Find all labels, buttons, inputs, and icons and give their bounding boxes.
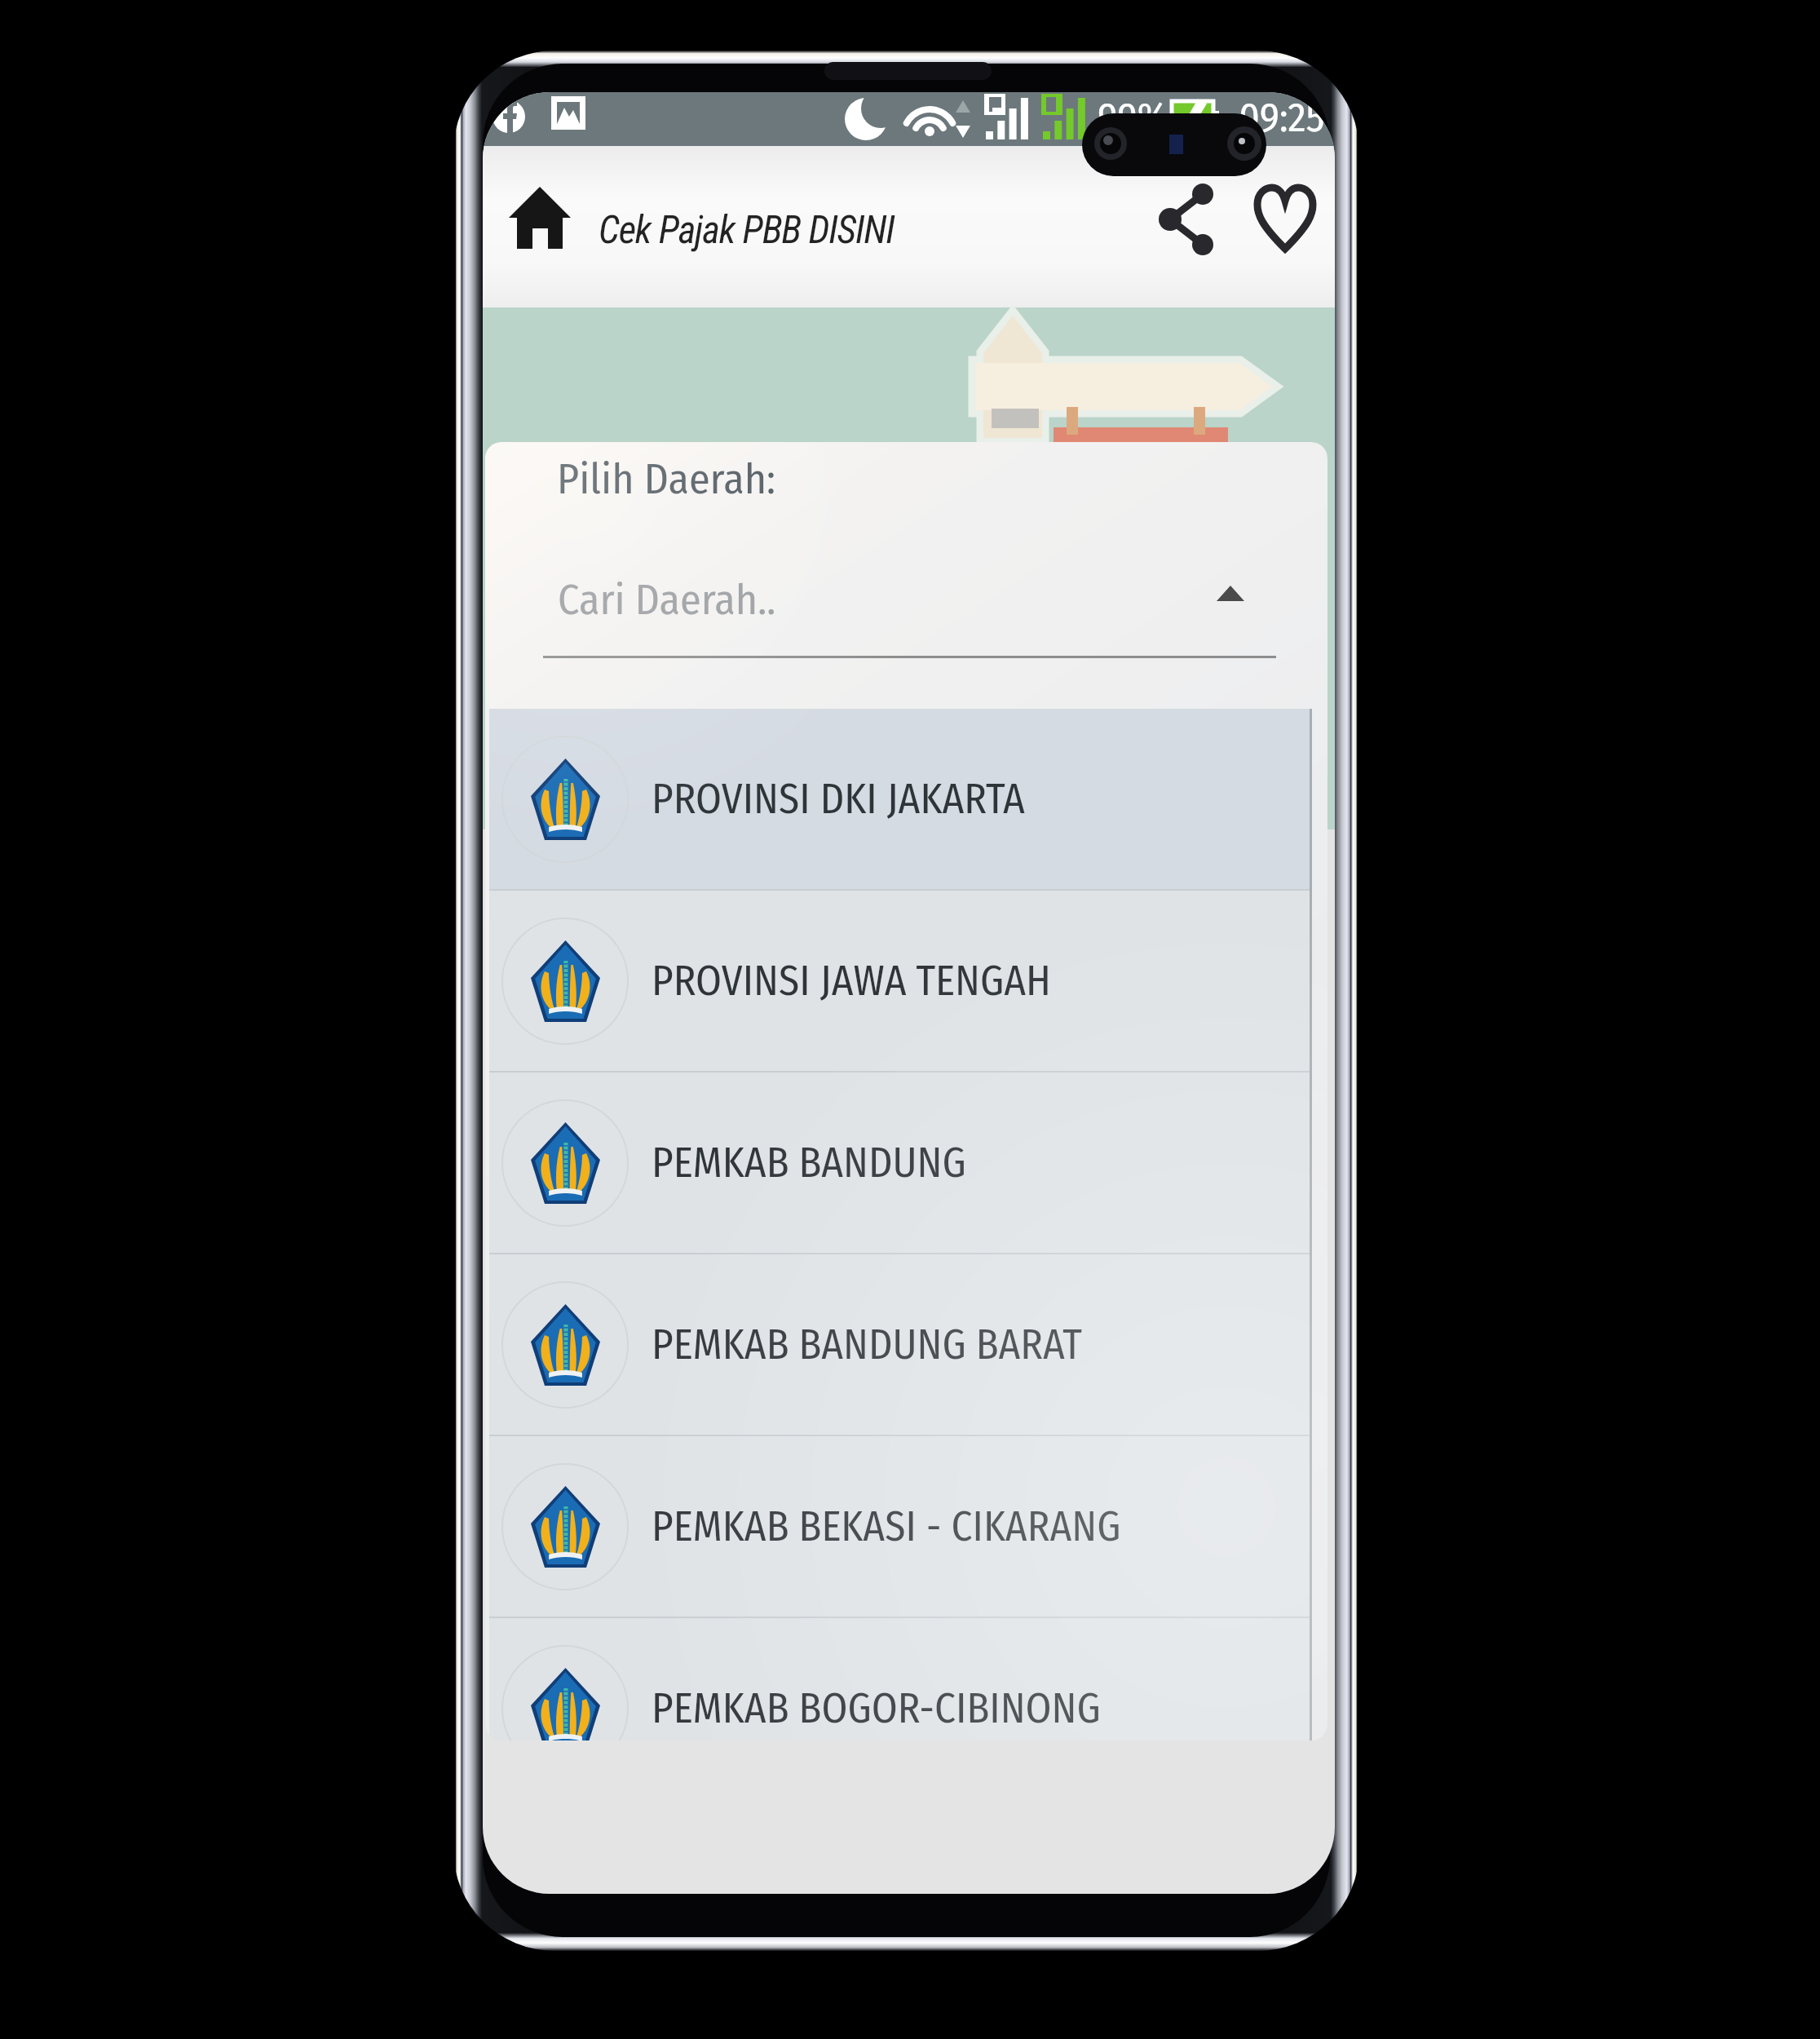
button[interactable]: PEMKAB BANDUNG BARAT (489, 1254, 1312, 1435)
button[interactable]: PEMKAB BANDUNG (489, 1073, 1312, 1253)
button[interactable]: Share (1151, 184, 1222, 255)
button[interactable]: PROVINSI JAWA TENGAH (489, 891, 1312, 1071)
staticText: PEMKAB BANDUNG BARAT (652, 1320, 1082, 1369)
staticText: PROVINSI DKI JAKARTA (652, 774, 1025, 824)
staticText: Cari Daerah.. (558, 574, 776, 625)
staticText: PEMKAB BEKASI - CIKARANG (652, 1502, 1121, 1551)
button[interactable]: PEMKAB BOGOR-CIBINONG (489, 1618, 1312, 1740)
staticText: Pilih Daerah: (557, 453, 776, 504)
staticText: 09:25 (1239, 93, 1325, 142)
button[interactable]: Cari Daerah.. (543, 589, 1276, 658)
staticText: PROVINSI JAWA TENGAH (652, 956, 1051, 1006)
staticText: 99% (1098, 93, 1168, 142)
button[interactable]: Favorite (1249, 183, 1321, 254)
staticText: PEMKAB BOGOR-CIBINONG (652, 1683, 1101, 1733)
button[interactable]: PROVINSI DKI JAKARTA (489, 709, 1312, 889)
staticText: PEMKAB BANDUNG (652, 1138, 966, 1188)
staticText: Cek Pajak PBB DISINI (599, 207, 895, 252)
button[interactable]: PEMKAB BEKASI - CIKARANG (489, 1436, 1312, 1617)
button[interactable]: Home (501, 178, 579, 256)
